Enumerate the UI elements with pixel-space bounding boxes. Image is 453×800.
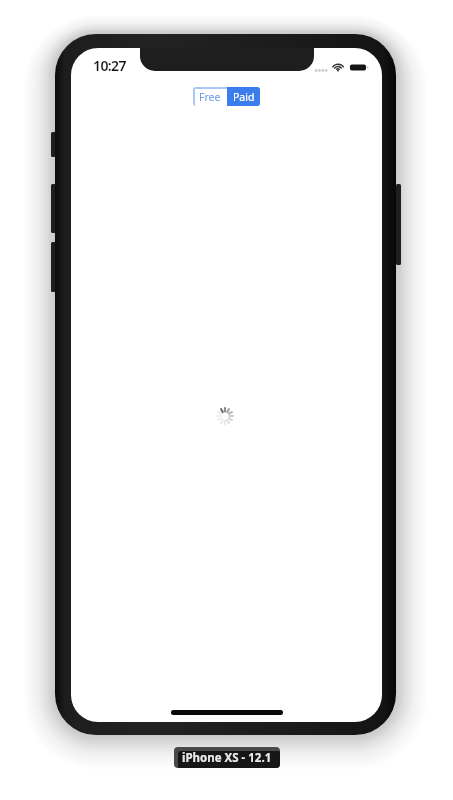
staticText: iPhone XS - 12.1 — [182, 750, 272, 766]
other: Cellular signal — [314, 64, 327, 72]
other: Battery full — [350, 63, 369, 72]
button[interactable]: Paid — [227, 87, 260, 106]
staticText: Free — [199, 90, 221, 104]
staticText: 10:27 — [93, 56, 126, 75]
other: Loading — [217, 408, 233, 424]
staticText: Paid — [233, 90, 255, 104]
button[interactable]: Free — [193, 87, 227, 106]
other: Wi-Fi — [332, 62, 344, 72]
button[interactable]: iPhone XS - 12.1 — [174, 747, 280, 768]
